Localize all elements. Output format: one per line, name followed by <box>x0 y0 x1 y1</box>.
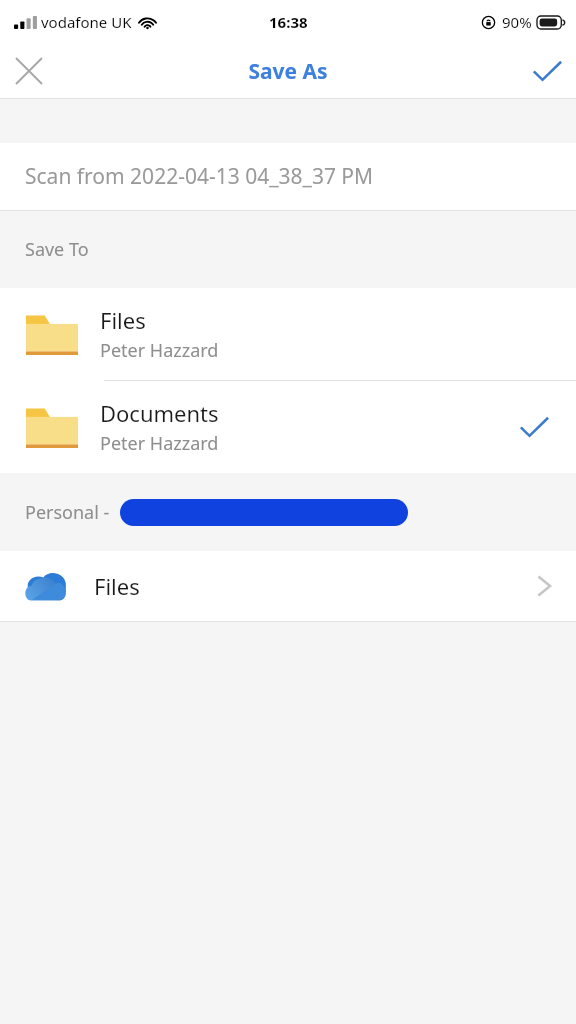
staticText: Save As <box>248 57 328 86</box>
staticText: Documents <box>100 398 219 428</box>
staticText: Peter Hazzard <box>100 338 219 363</box>
staticText: Save To <box>25 237 89 262</box>
staticText: 16:38 <box>269 12 308 32</box>
button[interactable]: Scan from 2022-04-13 04_38_37 PM <box>0 143 576 210</box>
button[interactable]: Files <box>0 551 576 621</box>
staticText: 90% <box>502 12 532 32</box>
staticText: Files <box>94 571 536 601</box>
staticText: Personal - <box>25 500 110 525</box>
button[interactable]: Close <box>0 44 58 98</box>
staticText: Scan from 2022-04-13 04_38_37 PM <box>25 162 374 191</box>
staticText: Peter Hazzard <box>100 431 219 456</box>
staticText: vodafone UK <box>41 12 132 32</box>
button[interactable]: Documents <box>0 381 576 473</box>
button[interactable]: Confirm save <box>518 44 576 98</box>
button[interactable]: Files <box>0 288 576 380</box>
staticText: Files <box>100 305 146 335</box>
